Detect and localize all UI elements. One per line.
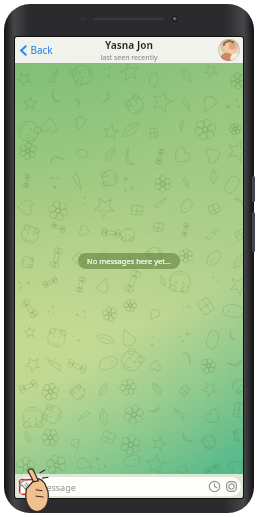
button[interactable]: Camera <box>225 480 238 493</box>
button[interactable]: Schedule message <box>208 480 221 493</box>
button[interactable]: Back <box>15 37 61 63</box>
button[interactable]: Profile photo <box>218 39 240 61</box>
staticText: Yasna Jon <box>105 38 153 52</box>
staticText: No messages here yet... <box>87 256 171 266</box>
staticText: last seen recently <box>100 53 158 63</box>
staticText: Back <box>30 43 53 57</box>
staticText: Message <box>38 481 76 493</box>
button[interactable]: Attach file <box>19 479 35 495</box>
